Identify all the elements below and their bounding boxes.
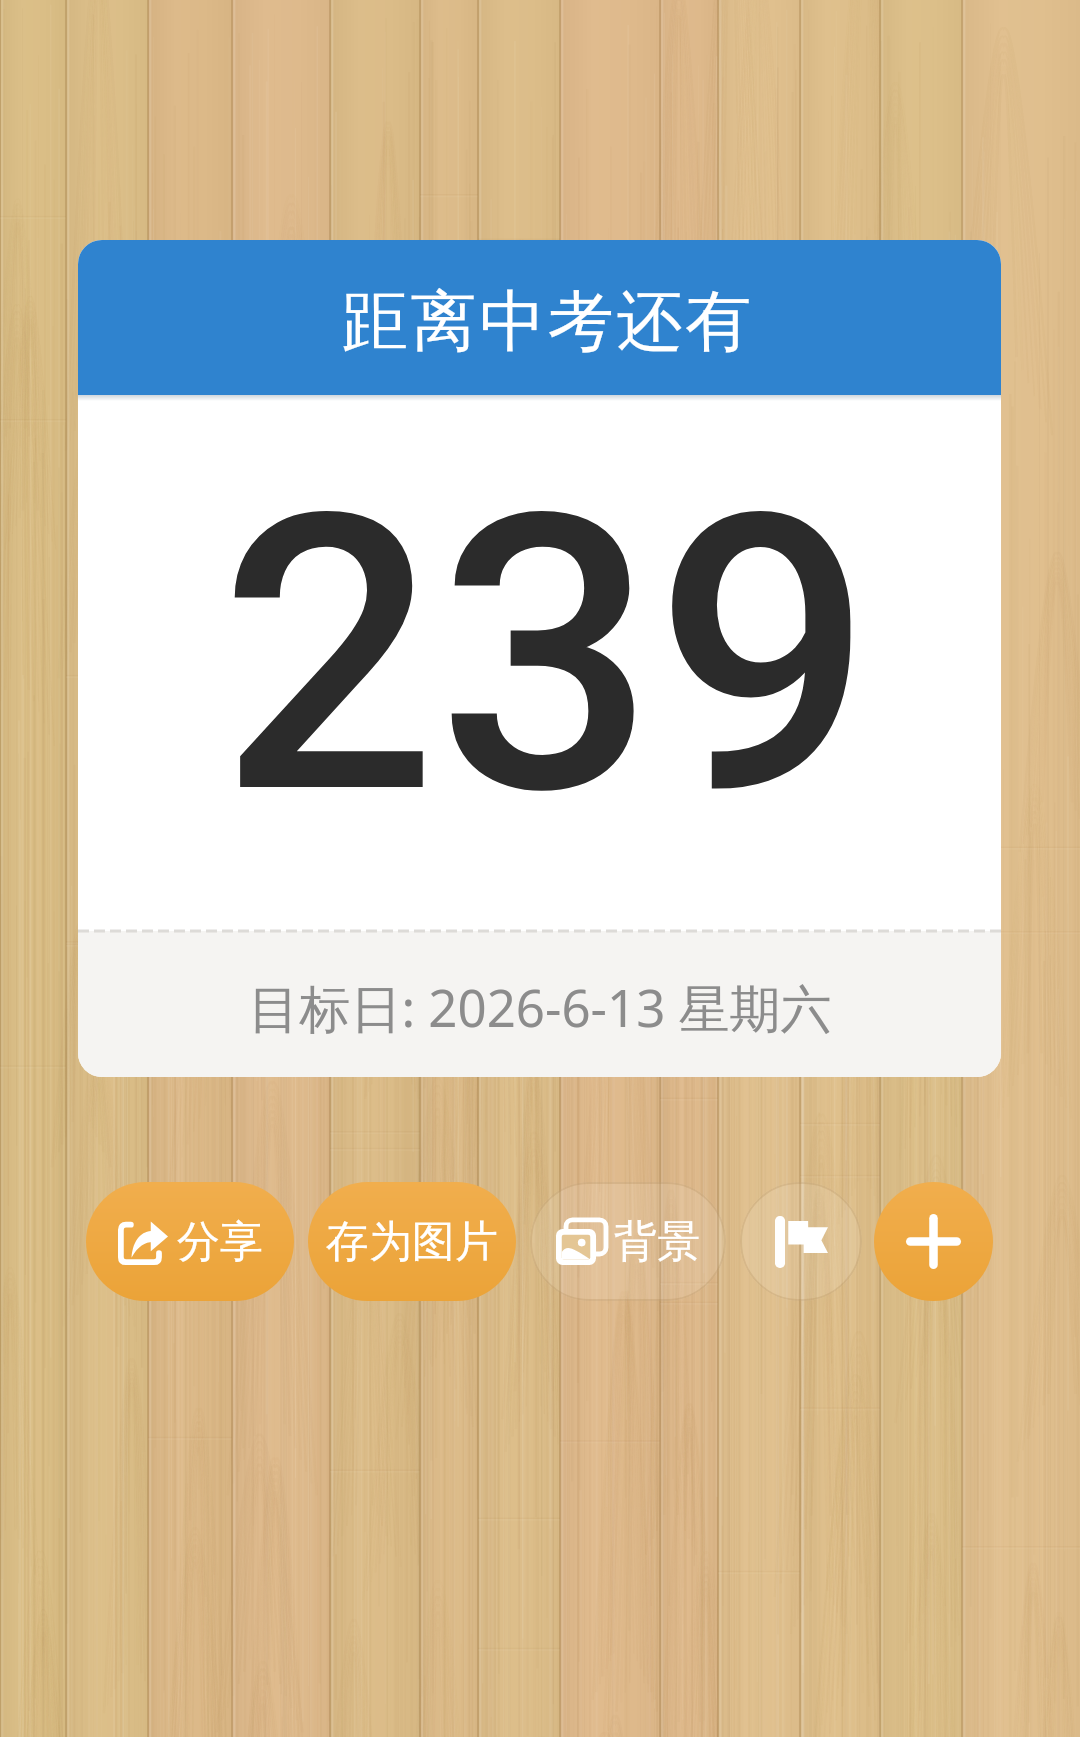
staticText: 目标日: 2026-6-13 星期六 <box>248 972 832 1042</box>
button[interactable]: Add countdown <box>874 1182 993 1301</box>
button[interactable]: 背景 <box>530 1182 726 1301</box>
button[interactable]: 存为图片 <box>308 1182 516 1301</box>
button[interactable]: 分享 <box>86 1182 294 1301</box>
staticText: 分享 <box>177 1215 263 1269</box>
button[interactable]: Set as target <box>740 1182 862 1301</box>
staticText: 背景 <box>614 1215 700 1269</box>
staticText: 距离中考还有 <box>342 280 754 363</box>
staticText: 239 <box>219 432 873 881</box>
staticText: 存为图片 <box>326 1215 498 1269</box>
